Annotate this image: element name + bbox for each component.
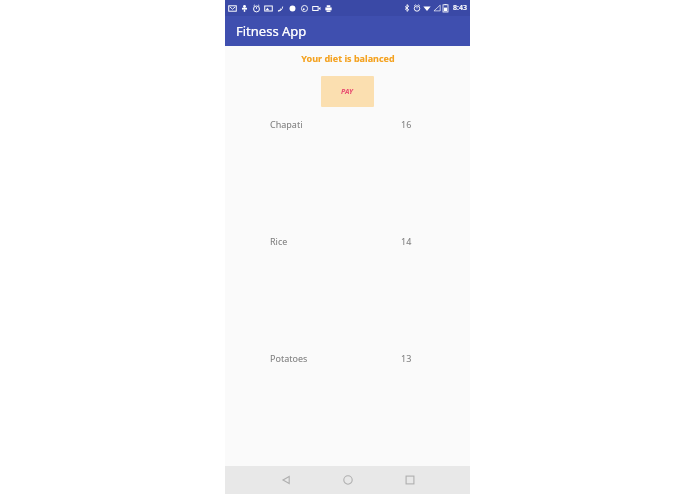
staticText: Chapati bbox=[270, 118, 303, 130]
button[interactable]: Recent apps bbox=[379, 466, 441, 494]
staticText: Potatoes bbox=[270, 352, 308, 364]
staticText: 14 bbox=[401, 235, 412, 247]
staticText: 16 bbox=[401, 118, 412, 130]
staticText: Fitness App bbox=[236, 22, 307, 40]
staticText: PAY bbox=[341, 87, 354, 97]
button[interactable]: Back bbox=[255, 466, 317, 494]
button[interactable]: Chapati bbox=[225, 115, 470, 132]
button[interactable]: Home bbox=[317, 466, 379, 494]
staticText: 8:43 bbox=[453, 3, 467, 13]
staticText: Your diet is balanced bbox=[301, 52, 395, 64]
button[interactable]: Rice bbox=[225, 232, 470, 249]
button[interactable]: Potatoes bbox=[225, 349, 470, 366]
staticText: Rice bbox=[270, 235, 288, 247]
staticText: 13 bbox=[401, 352, 412, 364]
button[interactable]: PAY bbox=[321, 76, 374, 107]
